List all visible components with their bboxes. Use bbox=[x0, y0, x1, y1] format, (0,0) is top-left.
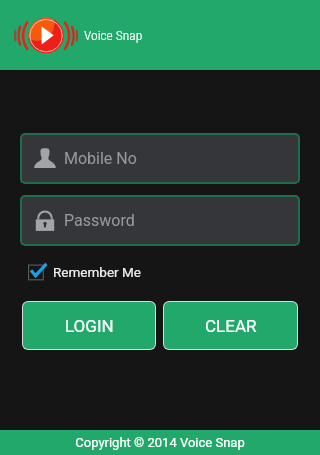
button[interactable]: LOGIN bbox=[23, 302, 155, 349]
button[interactable]: CLEAR bbox=[164, 302, 297, 349]
staticText: Password bbox=[64, 211, 135, 230]
staticText: Copyright © 2014 Voice Snap bbox=[75, 435, 245, 450]
button[interactable]: Password bbox=[20, 195, 300, 246]
staticText: Remember Me bbox=[53, 264, 141, 280]
staticText: LOGIN bbox=[65, 316, 114, 336]
staticText: CLEAR bbox=[205, 316, 257, 336]
staticText: Mobile No bbox=[64, 149, 137, 168]
button[interactable]: Mobile No bbox=[20, 133, 300, 184]
staticText: Voice Snap bbox=[84, 27, 143, 43]
button[interactable]: Remember Me bbox=[28, 262, 141, 282]
